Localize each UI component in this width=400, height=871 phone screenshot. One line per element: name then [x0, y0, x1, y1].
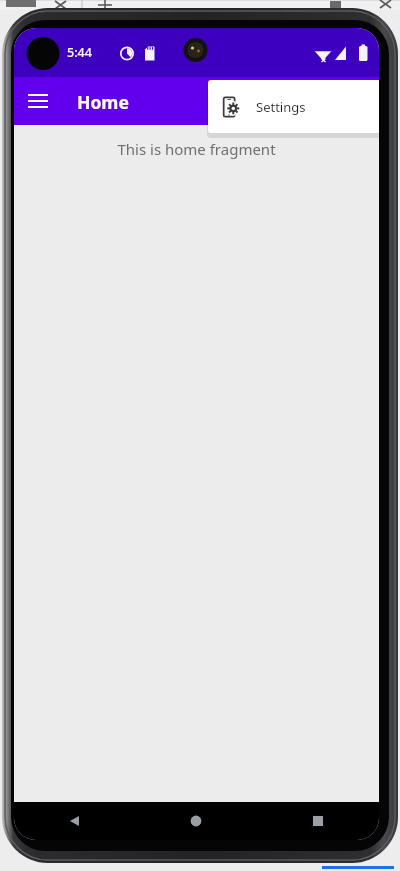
button[interactable]: Settings	[208, 80, 379, 133]
staticText: 5:44	[67, 44, 92, 61]
staticText: Settings	[256, 98, 306, 116]
staticText: Home	[77, 90, 129, 114]
button[interactable]: Recent apps	[257, 802, 379, 840]
button[interactable]: Home	[135, 802, 257, 840]
other: Settings	[220, 96, 242, 118]
button[interactable]: Open navigation drawer	[24, 87, 52, 115]
button[interactable]: Back	[14, 802, 135, 840]
staticText: This is home fragment	[14, 139, 379, 159]
